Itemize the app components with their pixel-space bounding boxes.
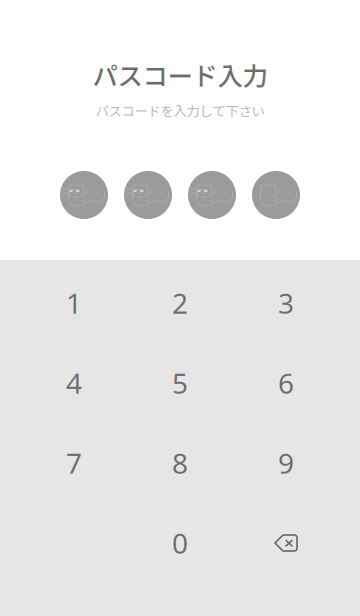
staticText: 0 (172, 524, 188, 562)
staticText: 7 (66, 444, 82, 482)
button[interactable]: 1 (21, 263, 127, 343)
button[interactable]: 7 (21, 423, 127, 503)
staticText: 4 (66, 364, 82, 402)
button[interactable]: 0 (127, 503, 233, 583)
staticText: 6 (278, 364, 294, 402)
button[interactable]: 4 (21, 343, 127, 423)
button[interactable]: 5 (127, 343, 233, 423)
staticText: 8 (172, 444, 188, 482)
staticText: 1 (66, 284, 82, 322)
staticText: 2 (172, 284, 188, 322)
staticText: パスコードを入力して下さい (95, 101, 264, 120)
button[interactable]: Delete (233, 503, 339, 583)
button[interactable]: 6 (233, 343, 339, 423)
button[interactable]: 9 (233, 423, 339, 503)
staticText: パスコード入力 (92, 56, 267, 93)
button[interactable]: 3 (233, 263, 339, 343)
button[interactable]: 2 (127, 263, 233, 343)
staticText: 9 (278, 444, 294, 482)
button[interactable]: 8 (127, 423, 233, 503)
staticText: 5 (172, 364, 188, 402)
staticText: 3 (278, 284, 294, 322)
